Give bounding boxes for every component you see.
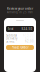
staticText: Total <box>7 27 13 31</box>
staticText: Arriving in 25 min <box>7 10 33 14</box>
staticText: $2.00 <box>25 40 34 43</box>
staticText: $19.00 <box>23 34 34 37</box>
staticText: $3.50 <box>25 37 34 40</box>
button[interactable]: Place Order <box>6 45 34 50</box>
staticText: $24.50 <box>21 27 32 31</box>
staticText: Subtotal <box>6 34 17 37</box>
staticText: Service <box>6 40 15 43</box>
staticText: Review your order <box>7 7 33 10</box>
staticText: Place Order <box>11 46 28 49</box>
staticText: Delivery <box>6 37 17 40</box>
